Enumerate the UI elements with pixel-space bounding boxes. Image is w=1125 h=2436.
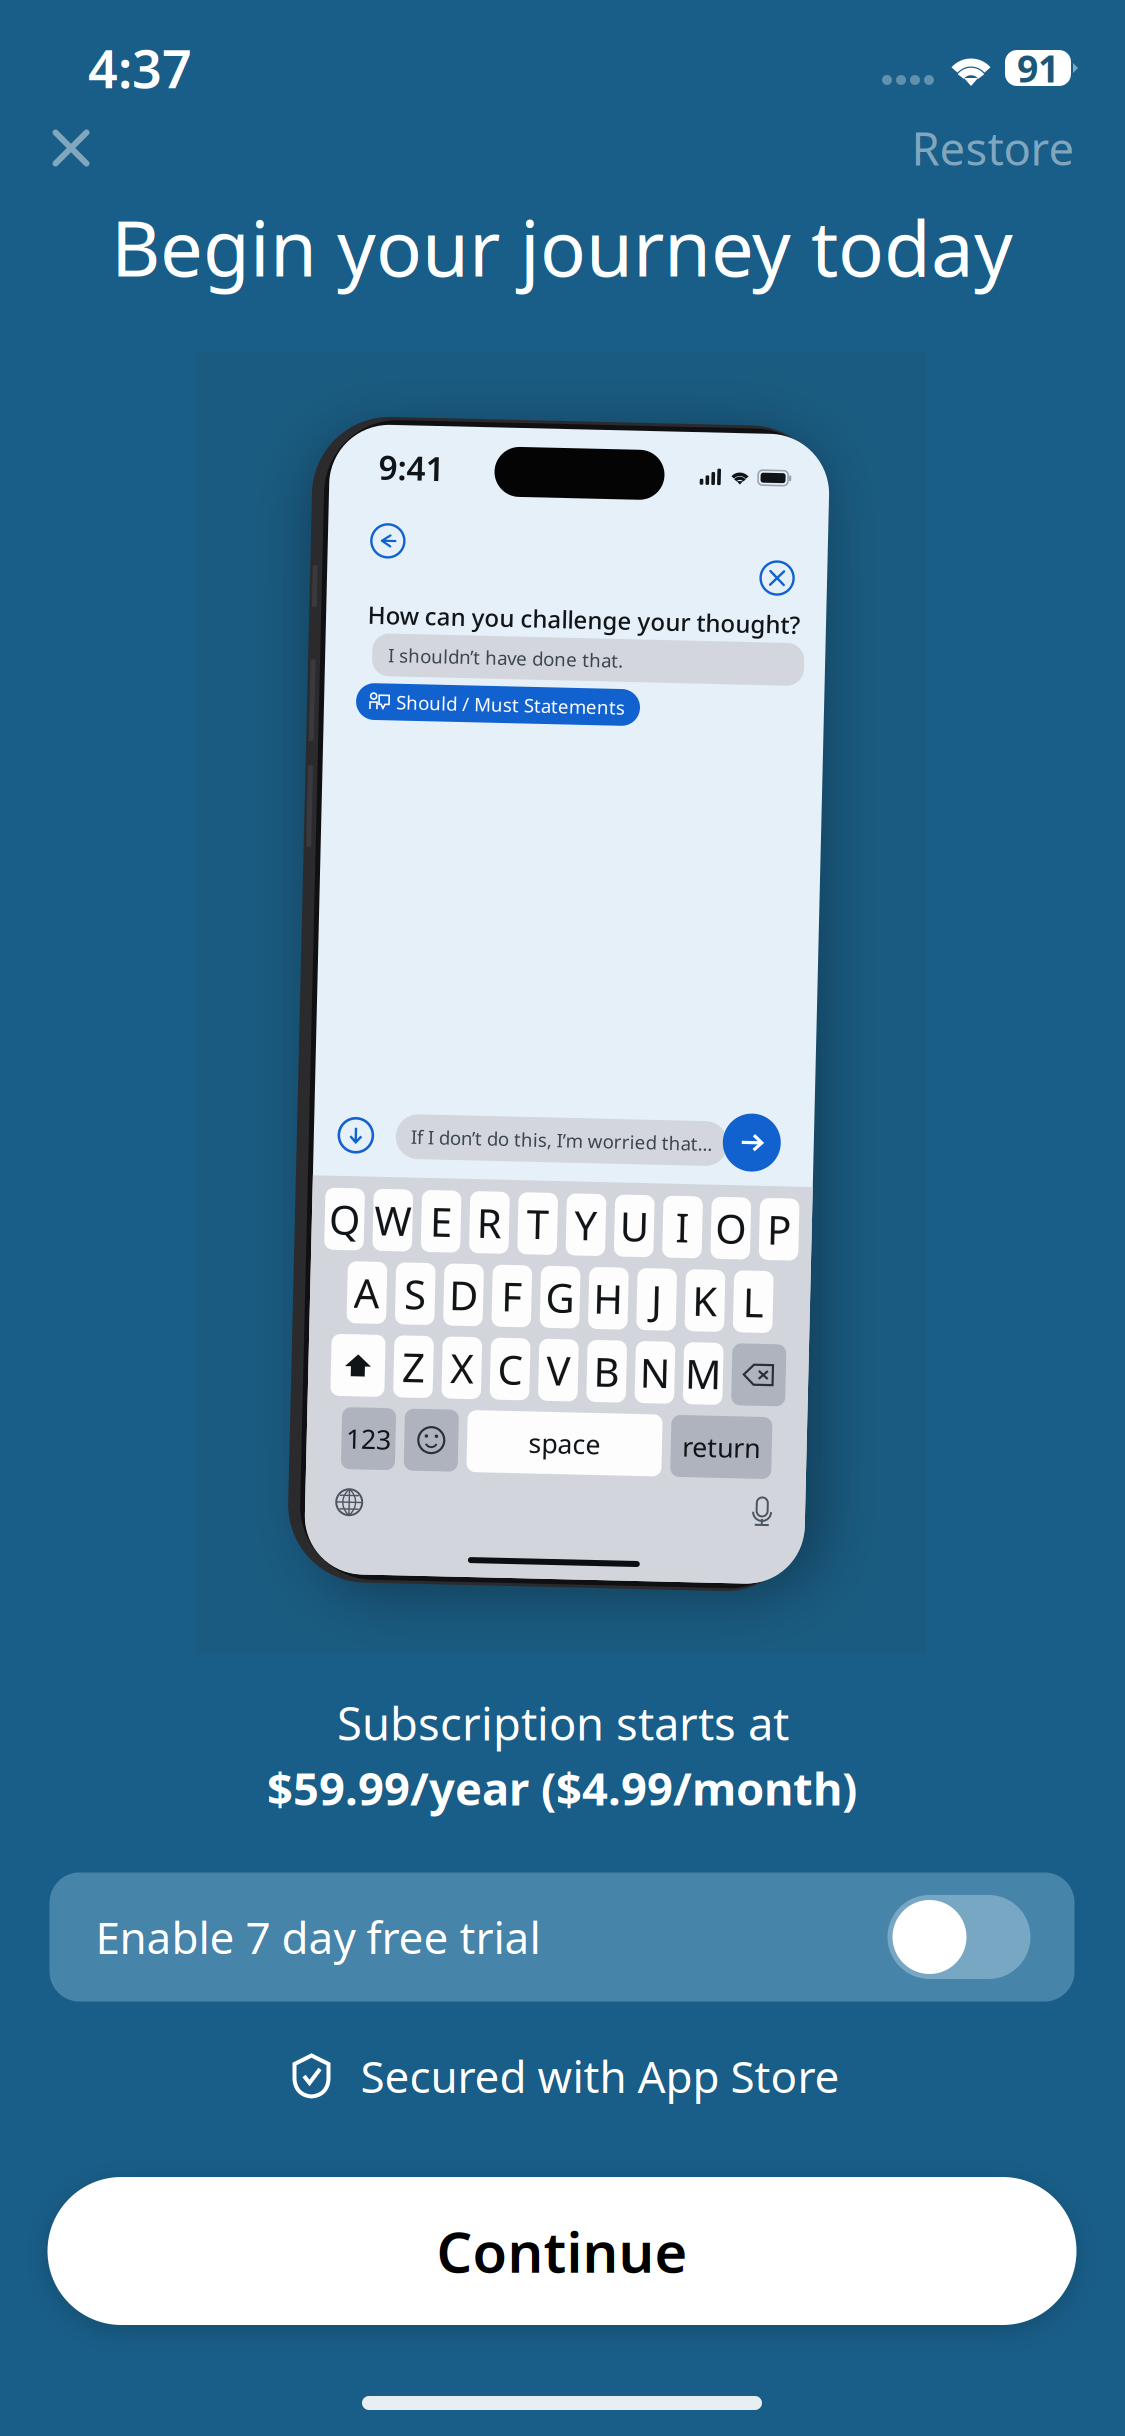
- staticText: S: [411, 1270, 433, 1323]
- staticText: Z: [411, 1343, 434, 1396]
- staticText: 123: [356, 1425, 401, 1461]
- staticText: Y: [580, 1197, 603, 1250]
- staticText: Continue: [436, 2214, 687, 2288]
- staticText: $59.99/year ($4.99/month): [267, 1758, 857, 1818]
- button[interactable]: Continue: [47, 2177, 1076, 2325]
- staticText: L: [750, 1270, 771, 1323]
- button[interactable]: Enable 7 day free trial: [49, 1872, 1074, 2001]
- staticText: J: [658, 1270, 669, 1323]
- staticText: Should / Must Statements: [389, 694, 618, 718]
- staticText: A: [361, 1270, 387, 1323]
- staticText: space: [539, 1425, 611, 1461]
- staticText: Restore: [911, 118, 1074, 178]
- staticText: D: [456, 1270, 485, 1323]
- staticText: return: [693, 1425, 771, 1461]
- button[interactable]: Restore: [897, 102, 1088, 194]
- staticText: Q: [334, 1197, 365, 1250]
- staticText: W: [379, 1197, 416, 1250]
- staticText: M: [694, 1343, 730, 1396]
- staticText: K: [699, 1270, 724, 1323]
- staticText: T: [532, 1197, 554, 1250]
- staticText: E: [435, 1197, 457, 1250]
- staticText: R: [482, 1197, 507, 1250]
- staticText: 9:41: [366, 449, 432, 493]
- staticText: C: [506, 1343, 531, 1396]
- staticText: P: [772, 1197, 796, 1250]
- staticText: O: [720, 1197, 751, 1250]
- staticText: N: [649, 1343, 679, 1396]
- staticText: F: [508, 1270, 529, 1323]
- staticText: Begin your journey today: [111, 196, 1013, 297]
- staticText: I shouldn’t have done that.: [380, 647, 615, 671]
- staticText: B: [602, 1343, 628, 1396]
- staticText: Subscription starts at: [337, 1693, 789, 1753]
- staticText: U: [625, 1197, 654, 1250]
- staticText: H: [600, 1270, 630, 1323]
- button[interactable]: Close: [25, 102, 117, 194]
- staticText: 91: [1017, 43, 1059, 93]
- staticText: G: [552, 1270, 581, 1323]
- staticText: Enable 7 day free trial: [95, 1908, 540, 1966]
- staticText: X: [459, 1343, 482, 1396]
- staticText: V: [555, 1343, 579, 1396]
- staticText: How can you challenge your thought?: [358, 603, 791, 635]
- staticText: 4:37: [88, 33, 192, 103]
- staticText: If I don’t do this, I’m worried that…: [414, 1128, 716, 1152]
- staticText: Secured with App Store: [360, 2047, 839, 2105]
- staticText: I: [681, 1197, 695, 1250]
